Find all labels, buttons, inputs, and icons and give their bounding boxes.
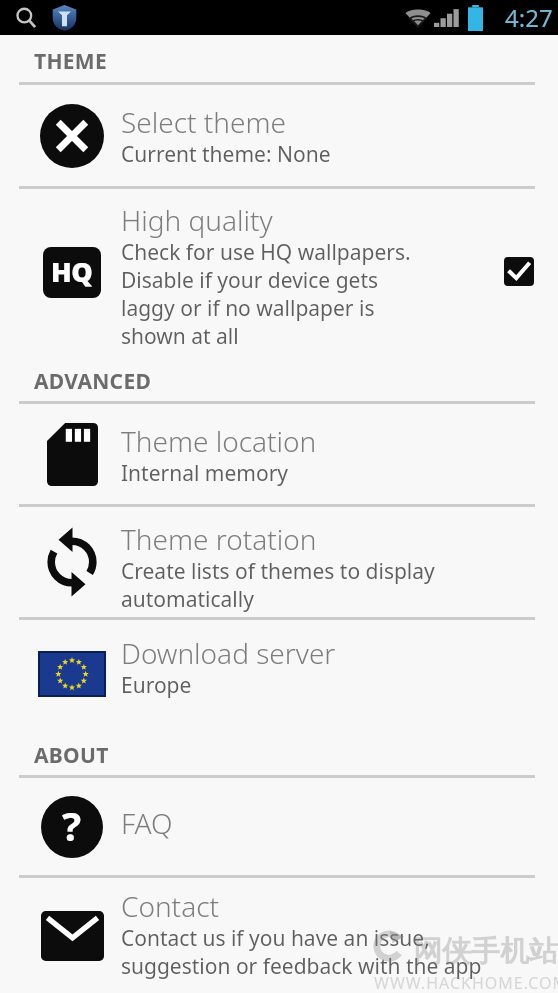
staticText: ABOUT bbox=[34, 741, 109, 770]
button[interactable]: Theme location bbox=[0, 404, 558, 504]
button[interactable]: Download server bbox=[0, 620, 558, 728]
staticText: ADVANCED bbox=[34, 367, 152, 396]
button[interactable]: HQ bbox=[0, 189, 558, 354]
staticText: Check for use HQ wallpapers. Disable if … bbox=[121, 238, 411, 350]
staticText: Internal memory bbox=[121, 459, 289, 487]
staticText: HQ bbox=[51, 253, 93, 290]
staticText: Contact us if you have an issue, suggest… bbox=[121, 924, 482, 980]
staticText: Create lists of themes to display automa… bbox=[121, 557, 435, 613]
staticText: Theme location bbox=[121, 427, 317, 459]
staticText: THEME bbox=[34, 47, 108, 76]
staticText: Theme rotation bbox=[121, 525, 317, 557]
button[interactable]: Contact bbox=[0, 878, 558, 993]
staticText: 网侠手机站 bbox=[413, 933, 558, 970]
button[interactable]: Select theme bbox=[0, 85, 558, 186]
staticText: FAQ bbox=[121, 809, 173, 841]
staticText: Europe bbox=[121, 671, 192, 699]
staticText: Contact bbox=[121, 892, 220, 924]
button[interactable]: Theme rotation bbox=[0, 507, 558, 617]
staticText: WWW.HACKHOME.COM bbox=[374, 972, 558, 993]
staticText: Select theme bbox=[121, 108, 286, 140]
staticText: High quality bbox=[121, 206, 273, 238]
staticText: Download server bbox=[121, 639, 336, 671]
staticText: ? bbox=[62, 798, 82, 852]
button[interactable]: High quality toggle bbox=[504, 257, 534, 286]
staticText: Current theme: None bbox=[121, 140, 331, 168]
staticText: 4:27 bbox=[505, 1, 553, 34]
button[interactable]: ? bbox=[0, 778, 558, 875]
